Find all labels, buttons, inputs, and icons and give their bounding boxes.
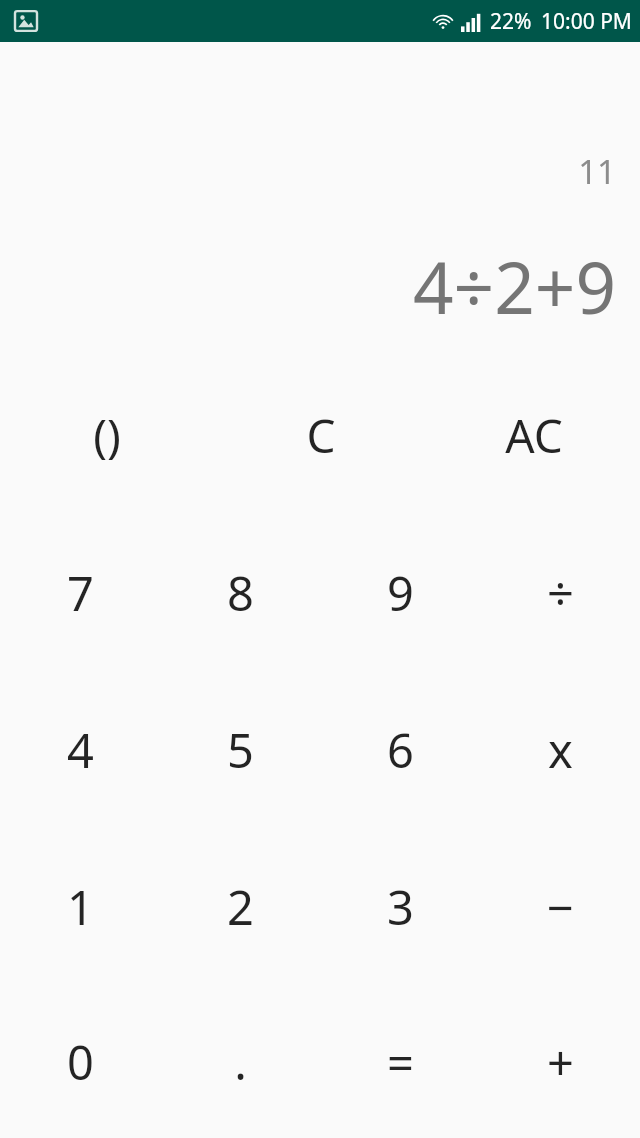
staticText: 3 — [387, 875, 414, 939]
button[interactable]: 6 — [320, 671, 480, 828]
button[interactable]: 4 — [0, 671, 160, 828]
button[interactable]: − — [480, 828, 640, 985]
staticText: 7 — [67, 561, 94, 625]
button[interactable]: 5 — [160, 671, 320, 828]
button[interactable]: C — [214, 357, 427, 514]
staticText: x — [548, 718, 573, 782]
staticText: 8 — [227, 561, 254, 625]
staticText: 22% — [490, 7, 532, 36]
button[interactable]: 7 — [0, 514, 160, 671]
staticText: 11 — [578, 149, 616, 194]
staticText: 5 — [227, 718, 254, 782]
button[interactable]: 3 — [320, 828, 480, 985]
button[interactable]: AC — [427, 357, 640, 514]
button[interactable]: () — [0, 357, 214, 514]
staticText: 4 — [67, 718, 94, 782]
button[interactable]: . — [160, 985, 320, 1138]
staticText: ÷ — [547, 561, 574, 625]
staticText: − — [547, 875, 574, 939]
staticText: AC — [505, 404, 563, 467]
staticText: = — [387, 1030, 414, 1094]
button[interactable]: + — [480, 985, 640, 1138]
button[interactable]: 0 — [0, 985, 160, 1138]
button[interactable]: 1 — [0, 828, 160, 985]
staticText: 9 — [387, 561, 414, 625]
button[interactable]: = — [320, 985, 480, 1138]
button[interactable]: ÷ — [480, 514, 640, 671]
button[interactable]: x — [480, 671, 640, 828]
button[interactable]: 2 — [160, 828, 320, 985]
button[interactable]: 9 — [320, 514, 480, 671]
staticText: 4÷2+9 — [412, 238, 616, 335]
staticText: 2 — [227, 875, 254, 939]
staticText: () — [93, 404, 121, 467]
other: Wi-Fi — [431, 12, 456, 32]
staticText: C — [306, 404, 336, 467]
staticText: 0 — [67, 1030, 94, 1094]
staticText: 6 — [387, 718, 414, 782]
button[interactable]: 8 — [160, 514, 320, 671]
staticText: + — [547, 1030, 574, 1094]
other: Signal strength — [461, 12, 483, 32]
staticText: 10:00 PM — [541, 7, 632, 36]
staticText: 1 — [67, 875, 94, 939]
staticText: . — [234, 1030, 247, 1094]
other: Screenshot — [15, 10, 37, 32]
